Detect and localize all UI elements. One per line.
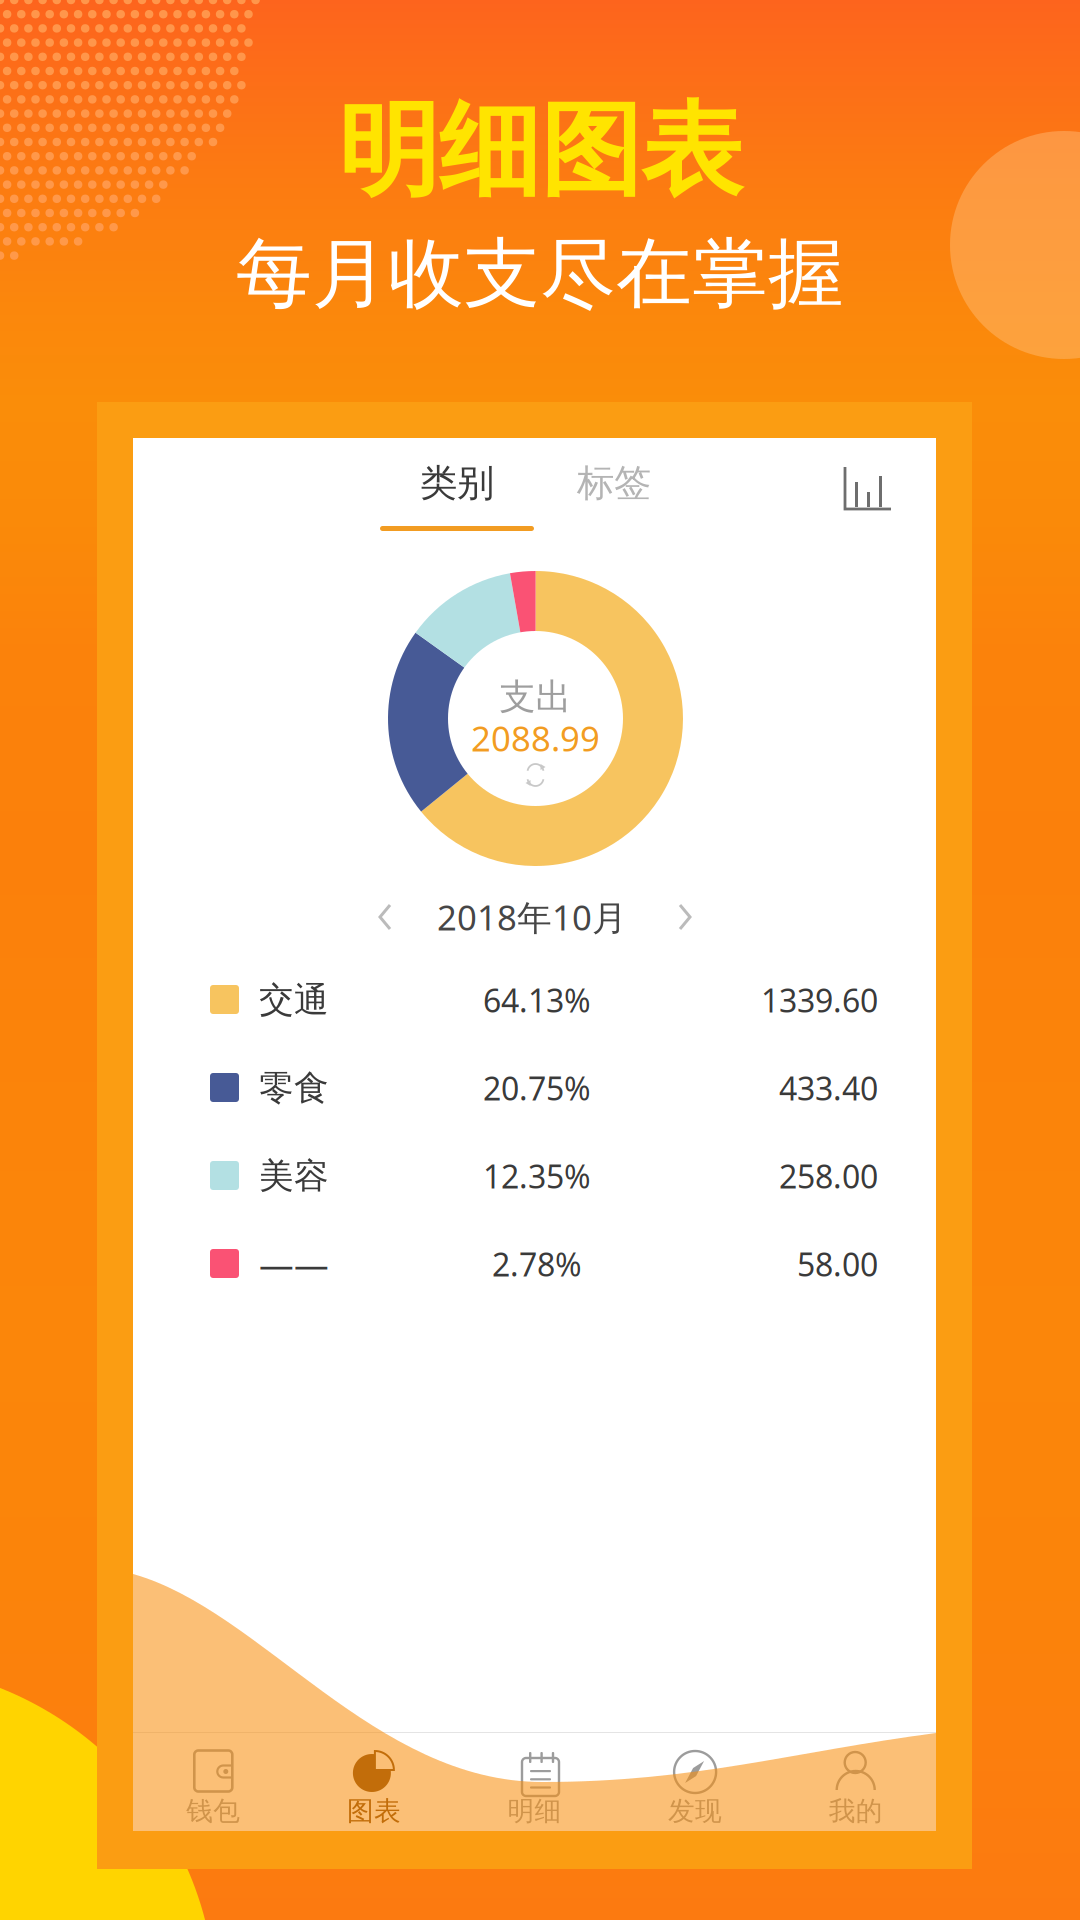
staticText: 类别 — [420, 460, 494, 506]
button[interactable]: 图表 — [294, 1733, 454, 1831]
staticText: 1339.60 — [761, 979, 878, 1021]
staticText: 每月收支尽在掌握 — [236, 227, 844, 321]
button[interactable]: 标签 — [554, 460, 674, 506]
staticText: —— — [259, 1241, 329, 1287]
staticText: 12.35% — [483, 1155, 591, 1197]
staticText: 发现 — [668, 1795, 722, 1827]
button[interactable]: Previous month — [363, 893, 407, 941]
staticText: 258.00 — [779, 1155, 878, 1197]
button[interactable]: 我的 — [775, 1733, 936, 1831]
staticText: 433.40 — [779, 1067, 878, 1109]
staticText: 2088.99 — [471, 715, 600, 761]
button[interactable]: 发现 — [615, 1733, 775, 1831]
button[interactable]: 交通 — [133, 956, 936, 1044]
button[interactable]: 类别 — [380, 443, 534, 523]
staticText: 图表 — [347, 1795, 401, 1827]
button[interactable]: 美容 — [133, 1132, 936, 1220]
staticText: 我的 — [829, 1795, 883, 1827]
staticText: 2018年10月 — [437, 894, 627, 940]
staticText: 2.78% — [492, 1243, 582, 1285]
staticText: 钱包 — [186, 1795, 240, 1827]
staticText: 64.13% — [483, 979, 591, 1021]
staticText: 明细 — [507, 1795, 561, 1827]
button[interactable]: —— — [133, 1220, 936, 1308]
staticText: 20.75% — [483, 1067, 591, 1109]
staticText: 明细图表 — [338, 89, 742, 213]
button[interactable]: 零食 — [133, 1044, 936, 1132]
staticText: 支出 — [499, 675, 571, 719]
staticText: 零食 — [259, 1067, 329, 1109]
staticText: 58.00 — [797, 1243, 878, 1285]
button[interactable]: Bar chart — [846, 468, 890, 508]
staticText: 美容 — [259, 1155, 329, 1197]
staticText: 交通 — [259, 979, 329, 1021]
button[interactable]: Next month — [663, 893, 707, 941]
staticText: 标签 — [577, 460, 651, 506]
button[interactable]: 钱包 — [133, 1733, 294, 1831]
button[interactable]: 明细 — [454, 1733, 615, 1831]
